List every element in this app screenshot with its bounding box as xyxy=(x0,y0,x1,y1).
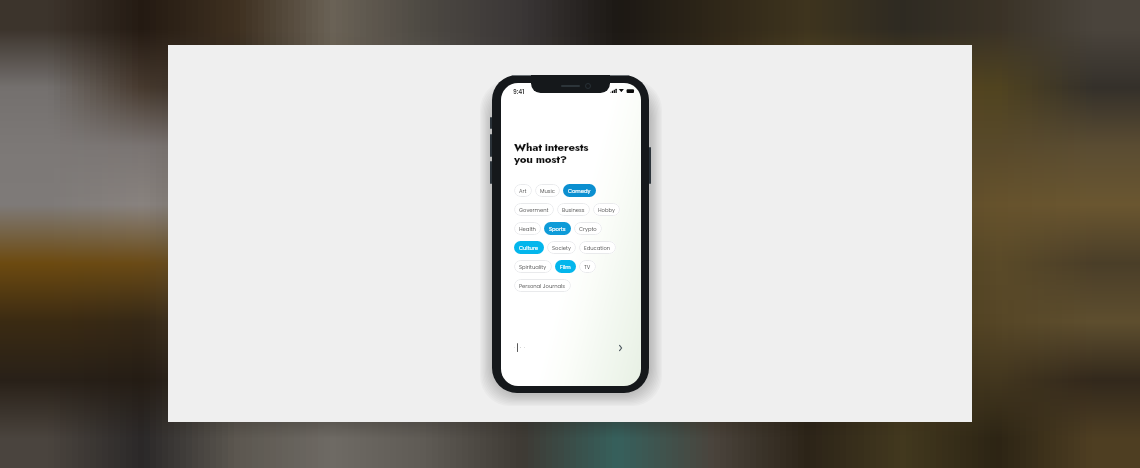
staticText: Art xyxy=(519,187,527,194)
staticText: Society xyxy=(552,244,571,251)
button[interactable]: Personal Journals xyxy=(514,279,571,292)
button[interactable]: Spirituality xyxy=(514,260,552,273)
staticText: Crypto xyxy=(579,225,597,232)
staticText: 9:41 xyxy=(513,88,525,96)
staticText: Goverment xyxy=(519,206,549,213)
staticText: TV xyxy=(584,263,591,270)
button[interactable]: Sports xyxy=(544,222,571,235)
button[interactable]: Education xyxy=(579,241,616,254)
button[interactable]: Next xyxy=(611,339,629,357)
staticText: Health xyxy=(519,225,536,232)
button[interactable]: Crypto xyxy=(574,222,602,235)
button[interactable]: TV xyxy=(579,260,596,273)
button[interactable]: Music xyxy=(535,184,560,197)
button[interactable]: Hobby xyxy=(593,203,620,216)
button[interactable]: Society xyxy=(547,241,576,254)
staticText: Sports xyxy=(549,225,566,232)
button[interactable]: Art xyxy=(514,184,532,197)
button[interactable]: Culture xyxy=(514,241,544,254)
button[interactable]: Comedy xyxy=(563,184,596,197)
staticText: Culture xyxy=(519,244,539,251)
staticText: Comedy xyxy=(568,187,591,194)
staticText: Spirituality xyxy=(519,263,547,270)
button[interactable]: Health xyxy=(514,222,541,235)
staticText: Education xyxy=(584,244,611,251)
button[interactable]: Goverment xyxy=(514,203,554,216)
staticText: Personal Journals xyxy=(519,282,566,289)
staticText: What interests you most? xyxy=(514,139,589,167)
staticText: Film xyxy=(560,263,571,270)
button[interactable]: Page indicator xyxy=(514,342,525,353)
staticText: Music xyxy=(540,187,555,194)
staticText: Business xyxy=(562,206,585,213)
staticText: Hobby xyxy=(598,206,615,213)
button[interactable]: Film xyxy=(555,260,576,273)
button[interactable]: Business xyxy=(557,203,590,216)
